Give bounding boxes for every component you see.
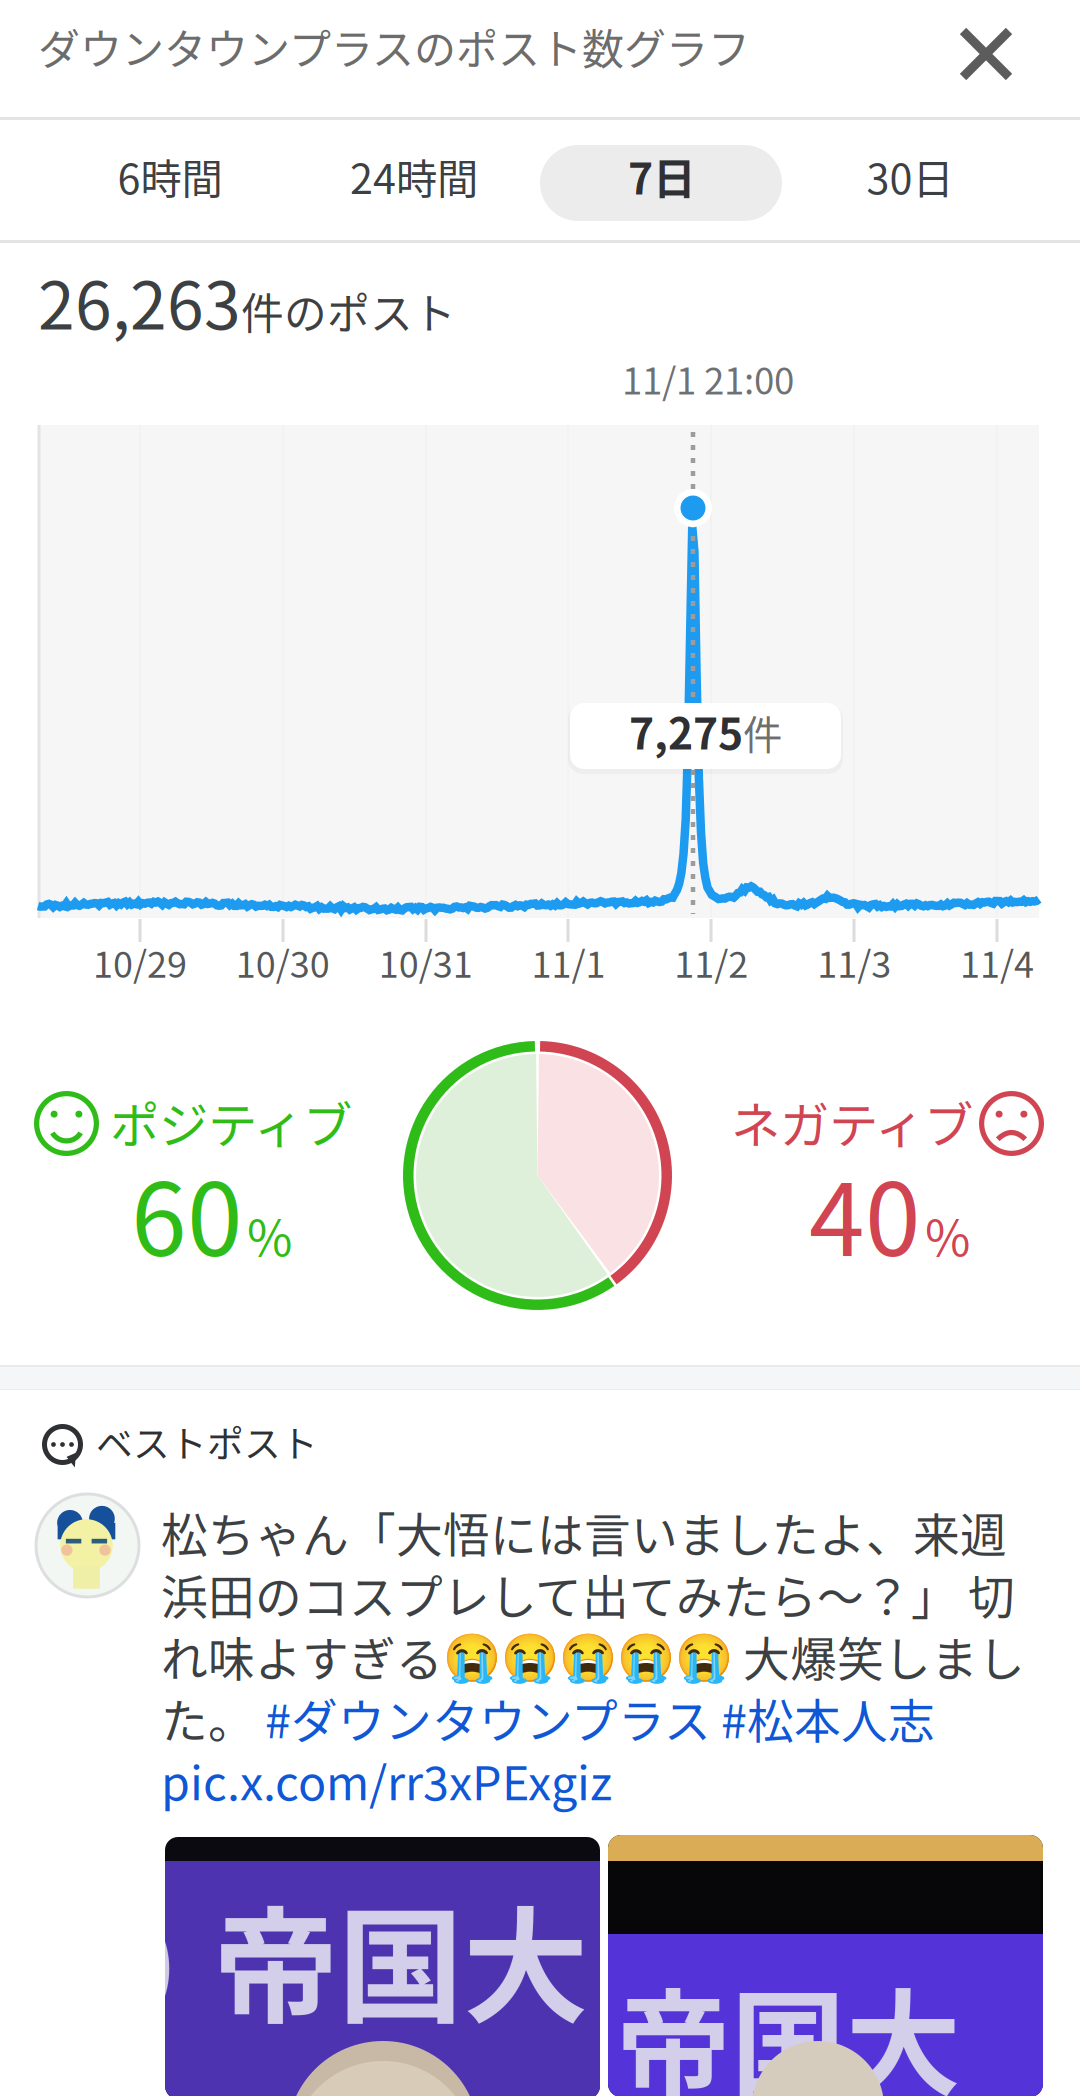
staticText: pic.x.com/rr3xPExgiz bbox=[161, 1746, 612, 1814]
staticText: 30日 bbox=[866, 146, 953, 206]
button[interactable]: 6時間 bbox=[49, 138, 291, 214]
staticText: 浜田のコスプレして出てみたら〜？」 切 bbox=[161, 1560, 1015, 1628]
staticText: 10/31 bbox=[379, 936, 473, 988]
button[interactable]: 24時間 bbox=[293, 138, 535, 214]
staticText: 24時間 bbox=[350, 146, 478, 206]
staticText: 11/3 bbox=[817, 936, 891, 988]
staticText: 件のポスト bbox=[241, 280, 456, 342]
staticText: ダウンタウンプラスのポスト数グラフ bbox=[38, 16, 750, 77]
button[interactable]: 閉じる bbox=[939, 7, 1033, 101]
staticText: 26,263 bbox=[38, 253, 241, 349]
staticText: 7,275 bbox=[629, 700, 743, 762]
button[interactable]: 7日 bbox=[540, 145, 782, 221]
staticText: #ダウンタウンプラス #松本人志 bbox=[265, 1684, 935, 1752]
staticText: 松ちゃん「大悟には言いましたよ、来週 bbox=[161, 1498, 1007, 1566]
staticText: 11/4 bbox=[960, 936, 1034, 988]
staticText: 帝国大 bbox=[616, 1953, 961, 2096]
staticText: % bbox=[247, 1199, 292, 1270]
staticText: 40 bbox=[809, 1140, 921, 1285]
staticText: ネガティブ bbox=[731, 1086, 973, 1157]
staticText: 11/1 bbox=[531, 936, 605, 988]
staticText: 10/30 bbox=[236, 936, 330, 988]
staticText: ポジティブ bbox=[110, 1086, 352, 1157]
staticText: 10/29 bbox=[93, 936, 187, 988]
staticText: 帝国大 bbox=[213, 1867, 588, 2048]
staticText: た。 bbox=[161, 1684, 265, 1752]
staticText: ） bbox=[127, 1871, 252, 2052]
staticText: 11/2 bbox=[674, 936, 748, 988]
staticText: 60 bbox=[131, 1140, 243, 1285]
staticText: 6時間 bbox=[117, 146, 222, 206]
button[interactable]: 30日 bbox=[789, 138, 1031, 214]
staticText: れ味よすぎる😭😭😭😭😭 大爆笑しまし bbox=[161, 1622, 1025, 1690]
staticText: 7日 bbox=[628, 145, 696, 207]
staticText: 11/1 21:00 bbox=[622, 352, 794, 405]
staticText: ベストポスト bbox=[96, 1415, 318, 1468]
staticText: % bbox=[925, 1199, 970, 1270]
staticText: 件 bbox=[743, 704, 782, 761]
